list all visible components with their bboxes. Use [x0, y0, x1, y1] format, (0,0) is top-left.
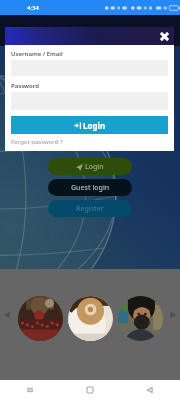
staticText: Password [11, 82, 40, 90]
button[interactable]: Photo 3 [118, 296, 163, 341]
staticText: Login [85, 162, 104, 172]
staticText: 4:34 [27, 4, 39, 12]
button[interactable]: Register [48, 200, 132, 217]
button[interactable]: Guest login [48, 179, 132, 196]
staticText: Register [76, 204, 104, 214]
button[interactable]: Home [60, 380, 120, 400]
button[interactable]: Recents [0, 380, 60, 400]
button[interactable]: Close [157, 29, 171, 43]
button[interactable]: Previous [3, 311, 11, 319]
button[interactable]: Login [11, 116, 168, 134]
button[interactable]: Forgot password ? [11, 138, 63, 146]
staticText: Login [83, 120, 106, 131]
button[interactable]: Back [120, 380, 180, 400]
button[interactable]: Photo 1 [18, 296, 63, 341]
staticText: Guest login [71, 183, 110, 193]
staticText: Username / Email [11, 50, 63, 58]
button[interactable]: Next [169, 311, 177, 319]
button[interactable]: Login [48, 158, 132, 175]
button[interactable]: Photo 2 [68, 296, 113, 341]
